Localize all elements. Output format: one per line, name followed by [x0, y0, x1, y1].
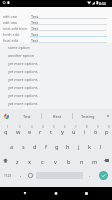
button[interactable]: edit one — [0, 13, 112, 19]
button[interactable]: 1 — [0, 123, 12, 138]
button[interactable]: yet more options — [0, 91, 112, 99]
button[interactable]: l — [95, 138, 106, 153]
button[interactable]: 8 — [79, 123, 90, 138]
staticText: 2 — [19, 125, 21, 129]
staticText: p — [105, 128, 109, 136]
button[interactable]: f — [40, 138, 51, 153]
staticText: another option — [8, 53, 35, 58]
staticText: 1 — [7, 125, 9, 129]
staticText: 3 — [31, 125, 33, 129]
button[interactable]: 4 — [35, 123, 46, 138]
button[interactable]: 5 — [46, 123, 57, 138]
button[interactable]: More suggestions — [103, 109, 112, 123]
button[interactable]: Comma — [15, 168, 26, 183]
button[interactable]: k — [84, 138, 95, 153]
staticText: 8:34 — [99, 1, 106, 6]
staticText: Test — [31, 20, 38, 25]
staticText: . — [89, 172, 91, 179]
staticText: yet more options — [8, 93, 38, 98]
staticText: h — [66, 143, 70, 151]
staticText: o — [94, 128, 98, 136]
staticText: 6 — [64, 125, 66, 129]
staticText: 8 — [86, 125, 88, 129]
button[interactable]: forth edit — [0, 31, 112, 37]
staticText: j — [78, 143, 80, 151]
staticText: yet more options — [8, 101, 38, 106]
button[interactable]: Recents — [74, 187, 112, 200]
staticText: ?123 — [4, 173, 12, 178]
button[interactable]: b — [62, 153, 75, 168]
staticText: Test — [31, 14, 38, 19]
button[interactable]: Google — [0, 109, 12, 123]
button[interactable]: Testing — [73, 109, 103, 123]
button[interactable]: 9 — [90, 123, 101, 138]
staticText: Testing — [81, 114, 95, 119]
staticText: u — [72, 128, 76, 136]
button[interactable]: g — [51, 138, 62, 153]
staticText: k — [88, 143, 91, 151]
button[interactable]: some option — [0, 43, 112, 51]
button[interactable]: z — [11, 153, 23, 168]
staticText: w — [16, 128, 21, 136]
button[interactable]: h — [62, 138, 73, 153]
staticText: t — [50, 128, 53, 136]
button[interactable]: edit two — [0, 19, 112, 25]
staticText: i — [84, 128, 86, 136]
staticText: z — [16, 158, 19, 166]
button[interactable]: Rest — [42, 109, 72, 123]
staticText: x — [28, 158, 31, 166]
staticText: edit two — [3, 20, 30, 25]
staticText: n — [80, 158, 84, 166]
button[interactable]: 6 — [57, 123, 68, 138]
button[interactable]: v — [49, 153, 62, 168]
button[interactable]: s — [18, 138, 29, 153]
staticText: some option — [8, 45, 30, 50]
button[interactable]: Emoji — [26, 168, 35, 183]
button[interactable]: yet more options — [0, 75, 112, 83]
staticText: 5 — [53, 125, 55, 129]
button[interactable]: ?123 — [0, 168, 15, 183]
button[interactable]: another option — [0, 51, 112, 59]
button[interactable]: 3 — [24, 123, 35, 138]
staticText: f — [45, 143, 47, 151]
button[interactable]: d — [29, 138, 40, 153]
staticText: final edit — [3, 38, 30, 43]
button[interactable]: Period — [84, 168, 95, 183]
button[interactable]: Backspace — [101, 153, 112, 168]
staticText: m — [92, 158, 98, 166]
staticText: l — [100, 143, 102, 151]
button[interactable]: 7 — [68, 123, 79, 138]
button[interactable]: yet more options — [0, 67, 112, 75]
button[interactable]: Enter — [95, 168, 112, 183]
staticText: yet more options — [8, 85, 38, 90]
staticText: g — [55, 143, 59, 151]
staticText: 4 — [42, 125, 44, 129]
button[interactable]: x — [23, 153, 36, 168]
staticText: next edit here — [3, 26, 30, 31]
staticText: e — [28, 128, 32, 136]
button[interactable]: j — [73, 138, 84, 153]
button[interactable]: c — [36, 153, 49, 168]
staticText: edit one — [3, 14, 30, 19]
staticText: Test — [31, 38, 38, 43]
staticText: b — [67, 158, 71, 166]
staticText: r — [39, 128, 42, 136]
button[interactable]: 0 — [101, 123, 112, 138]
button[interactable]: final edit — [0, 37, 112, 43]
button[interactable]: next edit here — [0, 25, 112, 31]
button[interactable]: Home — [37, 187, 74, 200]
button[interactable]: Test — [12, 109, 41, 123]
button[interactable]: m — [88, 153, 101, 168]
button[interactable]: yet more options — [0, 83, 112, 91]
button[interactable]: Shift — [0, 153, 11, 168]
button[interactable]: n — [75, 153, 88, 168]
button[interactable]: Back — [0, 187, 37, 200]
button[interactable]: a — [6, 138, 18, 153]
button[interactable]: 2 — [12, 123, 24, 138]
staticText: yet more options — [8, 77, 38, 82]
button[interactable]: yet more options — [0, 59, 112, 67]
staticText: c — [41, 158, 44, 166]
button[interactable]: yet more options — [0, 107, 112, 115]
button[interactable]: yet more options — [0, 99, 112, 107]
